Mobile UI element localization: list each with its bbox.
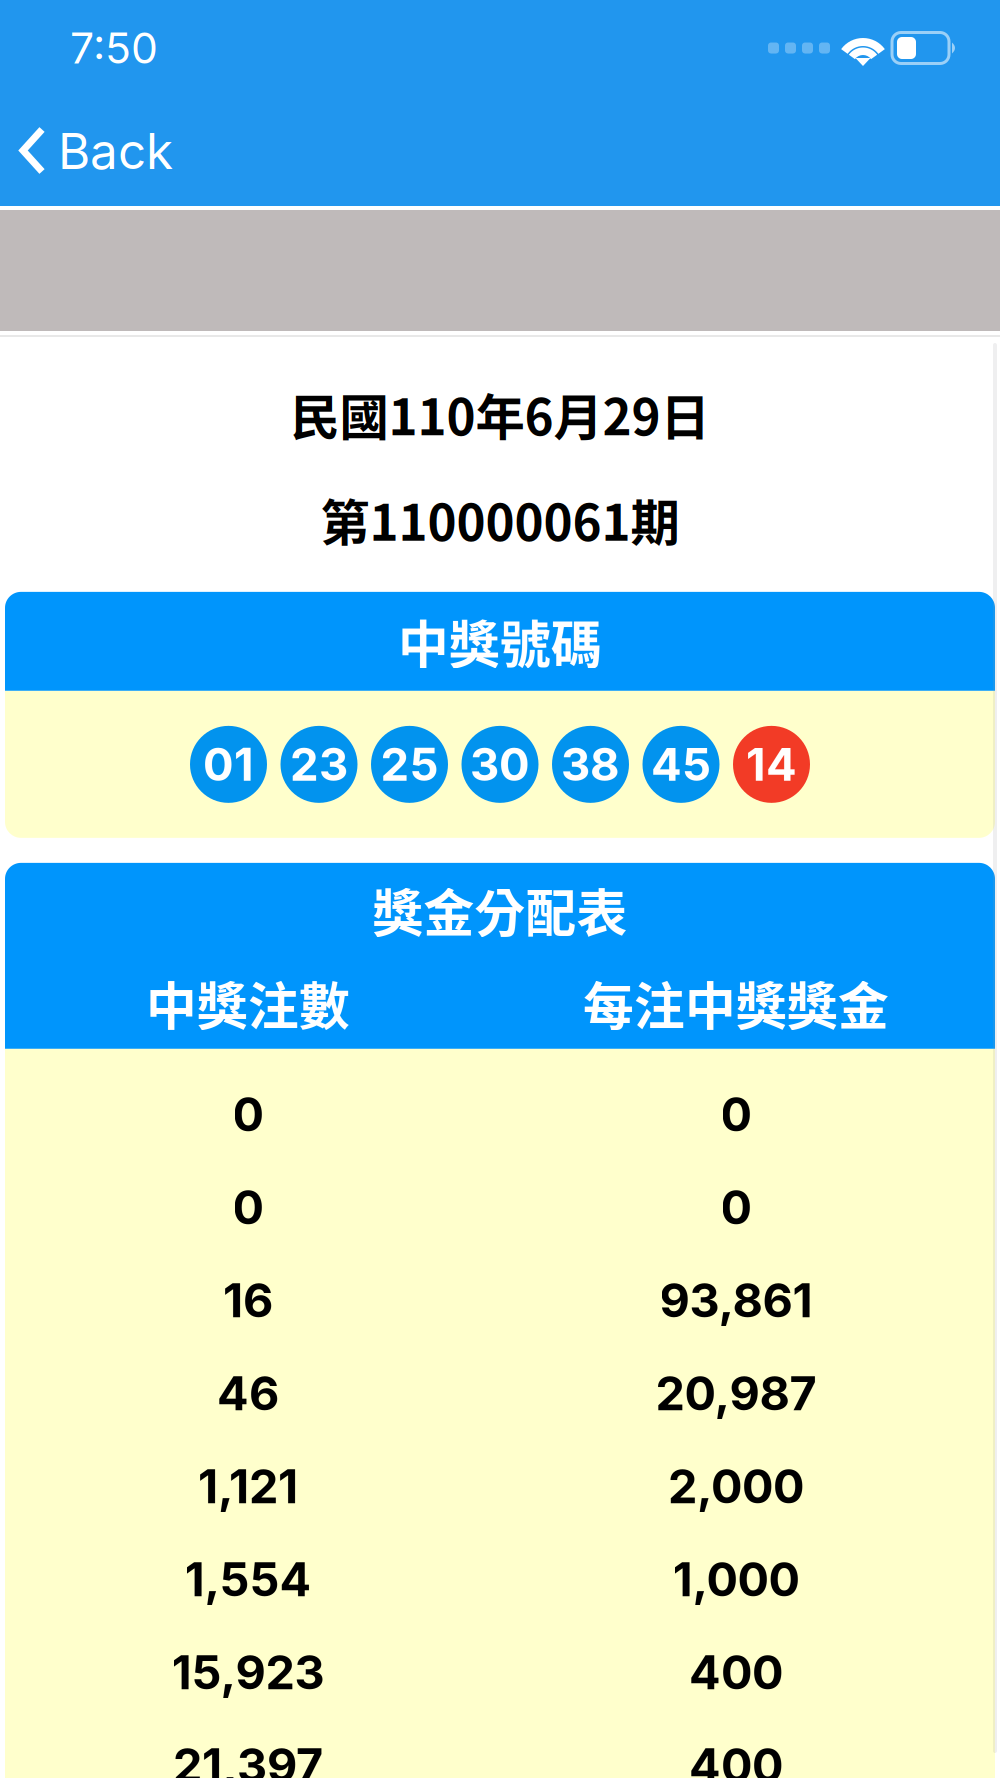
staticText: 93,861 xyxy=(659,1272,812,1329)
staticText: 民國110年6月29日 xyxy=(290,378,709,449)
staticText: 1,121 xyxy=(198,1458,298,1515)
staticText: 30 xyxy=(470,737,530,792)
staticText: 01 xyxy=(203,737,254,792)
staticText: Back xyxy=(58,121,173,181)
staticText: 15,923 xyxy=(171,1644,324,1701)
staticText: 第110000061期 xyxy=(320,483,679,555)
staticText: 38 xyxy=(561,737,620,792)
staticText: 16 xyxy=(223,1272,273,1329)
staticText: 14 xyxy=(746,737,797,792)
staticText: 45 xyxy=(651,737,711,792)
staticText: 20,987 xyxy=(655,1365,816,1422)
staticText: 2,000 xyxy=(668,1458,804,1515)
staticText: 獎金分配表 xyxy=(372,873,627,947)
staticText: 7:50 xyxy=(70,22,158,74)
staticText: 400 xyxy=(689,1644,783,1701)
staticText: 0 xyxy=(232,1179,263,1236)
staticText: 0 xyxy=(232,1086,263,1143)
staticText: 46 xyxy=(217,1365,279,1422)
staticText: 每注中獎獎金 xyxy=(583,966,889,1040)
staticText: 中獎注數 xyxy=(146,966,350,1040)
button[interactable]: Back xyxy=(0,96,197,206)
staticText: 23 xyxy=(290,737,348,792)
staticText: 25 xyxy=(380,737,438,792)
staticText: 1,554 xyxy=(184,1551,311,1608)
staticText: 400 xyxy=(689,1737,783,1778)
staticText: 中獎號碼 xyxy=(398,605,602,678)
staticText: 21,397 xyxy=(173,1737,323,1778)
staticText: 1,000 xyxy=(672,1551,799,1608)
staticText: 0 xyxy=(720,1086,751,1143)
staticText: 0 xyxy=(720,1179,751,1236)
